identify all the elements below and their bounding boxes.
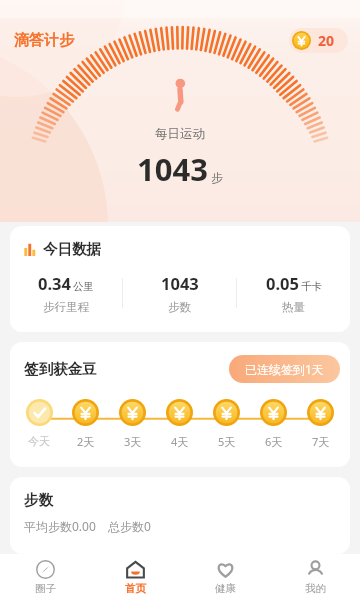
staticText: 0.05 bbox=[266, 272, 299, 294]
staticText: 热量 bbox=[282, 300, 305, 314]
button[interactable]: 4天 bbox=[156, 399, 203, 449]
staticText: 3天 bbox=[124, 434, 142, 449]
button[interactable]: 首页 bbox=[90, 554, 180, 600]
button[interactable]: 健康 bbox=[180, 554, 270, 600]
button[interactable]: 5天 bbox=[203, 399, 250, 449]
staticText: 今天 bbox=[28, 434, 50, 448]
staticText: 步 bbox=[211, 170, 223, 185]
staticText: 健康 bbox=[215, 582, 236, 595]
staticText: 圈子 bbox=[35, 582, 56, 595]
staticText: 步数 bbox=[168, 300, 191, 314]
staticText: 1043 bbox=[137, 148, 208, 190]
staticText: 我的 bbox=[305, 582, 326, 595]
button[interactable]: 6天 bbox=[250, 399, 297, 449]
staticText: 千卡 bbox=[301, 280, 322, 293]
staticText: 今日数据 bbox=[43, 240, 101, 258]
staticText: 1043 bbox=[161, 272, 199, 294]
button[interactable]: 7天 bbox=[297, 399, 344, 449]
staticText: 滴答计步 bbox=[14, 31, 74, 50]
staticText: 步行里程 bbox=[43, 300, 89, 314]
staticText: 平均步数0.00 bbox=[24, 518, 96, 534]
staticText: 4天 bbox=[171, 434, 189, 449]
staticText: 公里 bbox=[73, 280, 94, 293]
staticText: 签到获金豆 bbox=[24, 360, 97, 378]
staticText: 0.34 bbox=[38, 272, 71, 294]
staticText: 7天 bbox=[312, 434, 330, 449]
staticText: 首页 bbox=[125, 582, 146, 595]
staticText: 5天 bbox=[218, 434, 236, 449]
button[interactable]: 已连续签到1天 bbox=[229, 355, 340, 383]
button[interactable]: 2天 bbox=[62, 399, 109, 449]
button[interactable]: 今天 bbox=[16, 399, 62, 448]
button[interactable]: 3天 bbox=[109, 399, 156, 449]
button[interactable]: 我的 bbox=[270, 554, 360, 600]
staticText: 每日运动 bbox=[155, 126, 205, 142]
staticText: 2天 bbox=[77, 434, 95, 449]
staticText: 总步数0 bbox=[108, 518, 151, 534]
staticText: 20 bbox=[318, 31, 335, 50]
button[interactable]: 20 bbox=[289, 28, 348, 53]
staticText: 已连续签到1天 bbox=[245, 361, 324, 377]
staticText: 6天 bbox=[265, 434, 283, 449]
staticText: 步数 bbox=[24, 491, 53, 509]
button[interactable]: 圈子 bbox=[0, 554, 90, 600]
